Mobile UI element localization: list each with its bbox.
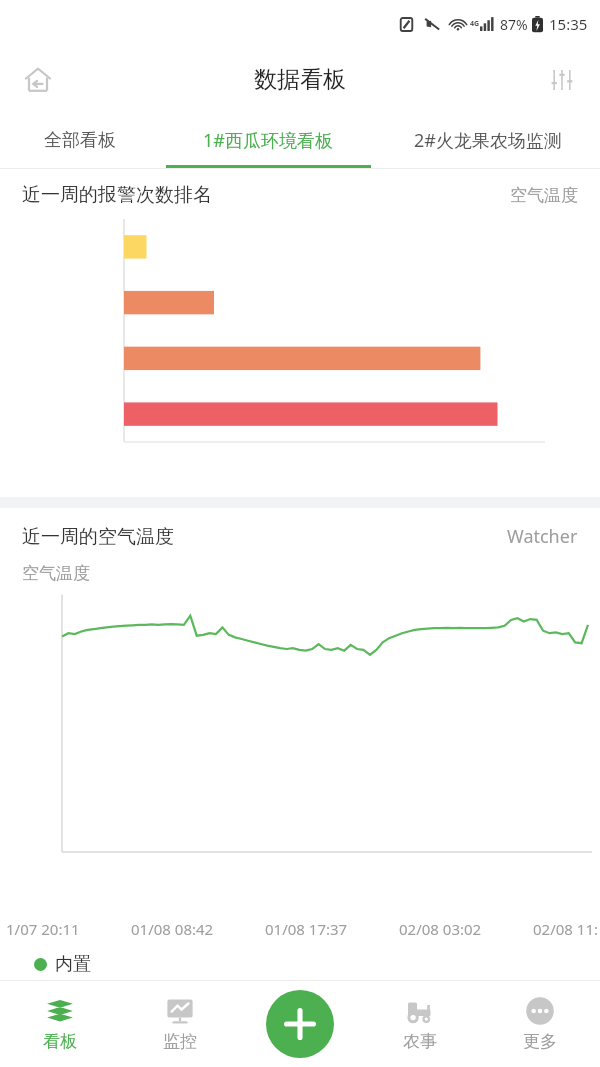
button[interactable]: 农事 — [360, 980, 480, 1067]
staticText: 01/08 17:37 — [265, 919, 348, 939]
button[interactable]: 监控 — [120, 980, 240, 1067]
staticText: Watcher — [507, 524, 578, 549]
staticText: 1/07 20:11 — [6, 919, 80, 939]
button[interactable]: 全部看板 — [0, 112, 160, 168]
staticText: 空气温度 — [22, 563, 90, 584]
button[interactable]: 更多 — [480, 980, 600, 1067]
staticText: 农事 — [403, 1031, 437, 1052]
button[interactable]: Home — [14, 56, 62, 104]
button[interactable]: 1#西瓜环境看板 — [160, 112, 376, 168]
staticText: 近一周的空气温度 — [22, 525, 174, 549]
staticText: 近一周的报警次数排名 — [22, 183, 212, 207]
staticText: 内置 — [55, 953, 91, 976]
staticText: 87% — [500, 15, 528, 34]
button[interactable]: 2#火龙果农场监测 — [376, 112, 600, 168]
staticText: 02/08 03:02 — [399, 919, 482, 939]
staticText: 数据看板 — [254, 65, 346, 94]
button[interactable]: Filter — [538, 56, 586, 104]
staticText: 看板 — [43, 1031, 77, 1052]
staticText: 更多 — [523, 1031, 557, 1052]
staticText: 01/08 08:42 — [131, 919, 214, 939]
staticText: 2#火龙果农场监测 — [414, 128, 562, 153]
button[interactable]: 看板 — [0, 980, 120, 1067]
staticText: 1#西瓜环境看板 — [203, 128, 333, 153]
staticText: 空气温度 — [510, 185, 578, 206]
staticText: 监控 — [163, 1031, 197, 1052]
staticText: 4G — [470, 19, 480, 29]
staticText: 15:35 — [549, 14, 588, 34]
staticText: 全部看板 — [44, 129, 116, 152]
button[interactable]: Add — [266, 990, 334, 1058]
staticText: 02/08 11: — [533, 919, 598, 939]
